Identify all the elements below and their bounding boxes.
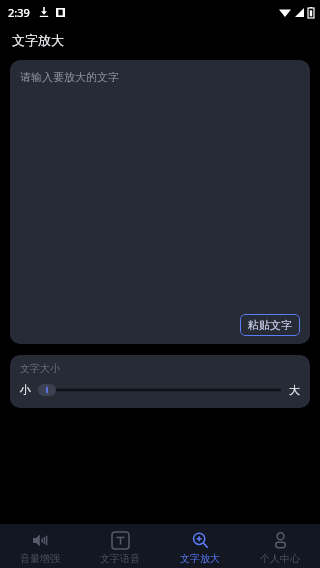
button[interactable]: 音量增强	[0, 527, 80, 565]
staticText: 小	[20, 383, 31, 397]
button[interactable]: 个人中心	[240, 527, 320, 565]
staticText: 文字大小	[20, 362, 60, 375]
staticText: 音量增强	[20, 552, 60, 565]
staticText: 大	[289, 383, 300, 397]
staticText: 个人中心	[260, 552, 300, 565]
button[interactable]	[39, 381, 281, 399]
staticText: 文字语音	[100, 552, 140, 565]
button[interactable]: 文字语音	[80, 527, 160, 565]
staticText: 2:39	[8, 5, 30, 20]
button[interactable]: 文字放大	[160, 527, 240, 565]
staticText: 文字放大	[180, 552, 220, 565]
staticText: 粘贴文字	[248, 318, 292, 332]
button[interactable]: 粘贴文字	[240, 314, 300, 336]
button[interactable]: 请输入要放大的文字	[10, 60, 310, 344]
staticText: 文字放大	[12, 32, 64, 48]
staticText: 请输入要放大的文字	[20, 70, 119, 84]
